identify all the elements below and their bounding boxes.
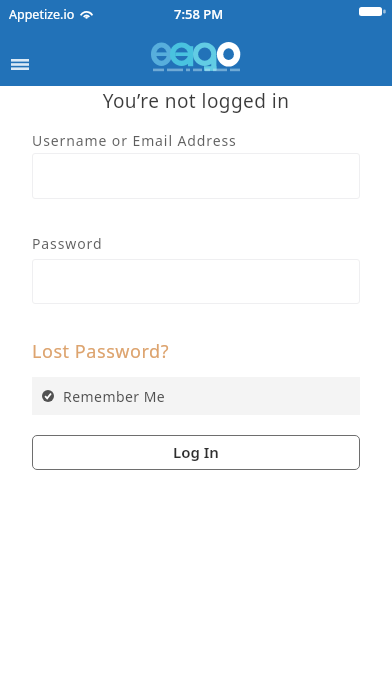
- button[interactable]: [32, 153, 360, 199]
- staticText: 7:58 PM: [174, 5, 224, 23]
- staticText: Username or Email Address: [32, 131, 237, 150]
- button[interactable]: Remember Me: [32, 377, 360, 415]
- staticText: Appetize.io: [9, 6, 75, 23]
- staticText: Remember Me: [63, 387, 166, 406]
- staticText: Log In: [173, 442, 219, 462]
- staticText: Password: [32, 234, 103, 253]
- staticText: You’re not logged in: [0, 88, 392, 114]
- button[interactable]: [32, 259, 360, 304]
- button[interactable]: Lost Password?: [32, 339, 170, 364]
- button[interactable]: Log In: [32, 435, 360, 470]
- button[interactable]: Menu: [1, 50, 39, 78]
